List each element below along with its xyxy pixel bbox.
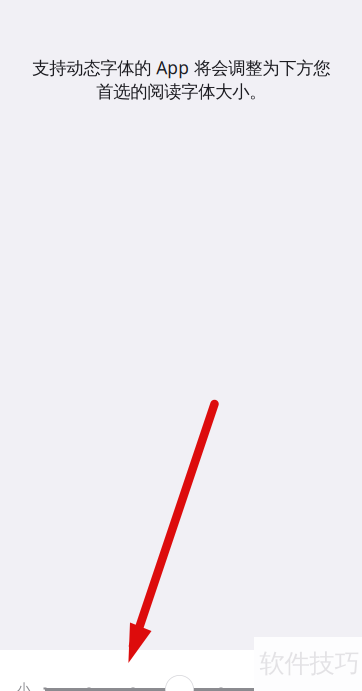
button[interactable]: Text size (0, 650, 362, 691)
staticText: 小 (17, 681, 30, 691)
staticText: 软件技巧 (259, 648, 359, 679)
staticText: 支持动态字体的 App 将会调整为下方您首选的阅读字体大小。 (32, 56, 330, 102)
